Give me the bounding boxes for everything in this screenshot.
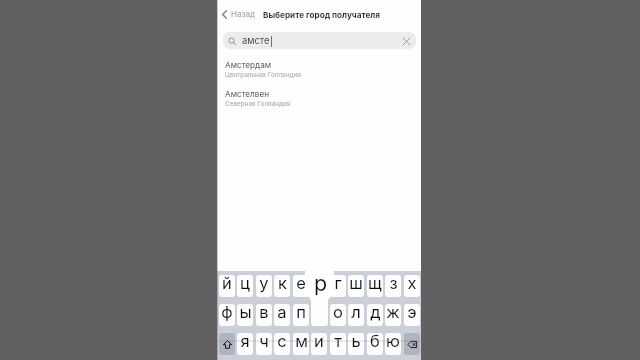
button[interactable]: т — [330, 333, 346, 355]
button[interactable]: Очистить — [399, 34, 413, 48]
staticText: е — [296, 275, 306, 293]
staticText: Назад — [231, 9, 255, 19]
button[interactable]: Назад — [220, 8, 257, 20]
button[interactable]: з — [385, 275, 401, 297]
button[interactable]: ш — [348, 275, 364, 297]
button[interactable]: с — [274, 333, 290, 355]
staticText: щ — [368, 275, 382, 293]
staticText: ц — [240, 275, 250, 293]
staticText: Выберите город получателя — [263, 10, 380, 20]
button[interactable]: м — [293, 333, 309, 355]
staticText: ь — [351, 333, 361, 351]
button[interactable]: б — [367, 333, 383, 355]
button[interactable]: ч — [256, 333, 272, 355]
staticText: амсте — [242, 35, 270, 46]
staticText: в — [259, 304, 269, 322]
button[interactable]: е — [293, 275, 309, 297]
button[interactable]: я — [237, 333, 253, 355]
staticText: с — [277, 333, 287, 351]
staticText: и — [314, 333, 324, 351]
button[interactable]: у — [256, 275, 272, 297]
button[interactable]: ю — [385, 333, 401, 355]
button[interactable]: Shift — [219, 333, 235, 355]
staticText: д — [370, 304, 381, 322]
staticText: ю — [386, 333, 400, 351]
button[interactable]: ф — [219, 304, 235, 326]
button[interactable]: х — [404, 275, 420, 297]
staticText: ж — [386, 304, 400, 322]
staticText: Центральная Голландия — [225, 71, 301, 79]
staticText: ы — [239, 304, 252, 322]
staticText: а — [277, 304, 287, 322]
staticText: э — [407, 304, 417, 322]
button[interactable]: и — [311, 333, 327, 355]
button[interactable]: Backspace — [404, 333, 420, 355]
staticText: я — [240, 333, 250, 351]
button[interactable]: Амстелвен — [217, 87, 421, 110]
staticText: Северная Голландия — [225, 100, 291, 108]
staticText: т — [334, 333, 342, 351]
button[interactable]: ь — [348, 333, 364, 355]
button[interactable]: амсте — [223, 32, 416, 49]
button[interactable]: ц — [237, 275, 253, 297]
button[interactable]: э — [404, 304, 420, 326]
staticText: ф — [221, 304, 233, 322]
button[interactable]: в — [256, 304, 272, 326]
button[interactable]: ы — [237, 304, 253, 326]
staticText: г — [334, 275, 342, 293]
button[interactable]: ж — [385, 304, 401, 326]
button[interactable]: д — [367, 304, 383, 326]
button[interactable]: о — [330, 304, 346, 326]
staticText: й — [222, 275, 232, 293]
staticText: к — [278, 275, 287, 293]
button[interactable]: а — [274, 304, 290, 326]
button[interactable]: к — [274, 275, 290, 297]
staticText: п — [296, 304, 306, 322]
staticText: Амстердам — [225, 60, 272, 70]
staticText: л — [351, 304, 361, 322]
staticText: з — [389, 275, 398, 293]
button[interactable]: Амстердам — [217, 58, 421, 81]
button[interactable]: п — [293, 304, 309, 326]
staticText: х — [407, 275, 417, 293]
staticText: р — [314, 270, 328, 296]
staticText: Амстелвен — [225, 89, 270, 99]
staticText: ч — [259, 333, 269, 351]
button[interactable]: й — [219, 275, 235, 297]
button[interactable]: щ — [367, 275, 383, 297]
staticText: б — [370, 333, 380, 351]
staticText: у — [259, 275, 269, 293]
button[interactable]: л — [348, 304, 364, 326]
staticText: о — [333, 304, 343, 322]
staticText: м — [295, 333, 308, 351]
button[interactable]: г — [330, 275, 346, 297]
staticText: ш — [349, 275, 363, 293]
